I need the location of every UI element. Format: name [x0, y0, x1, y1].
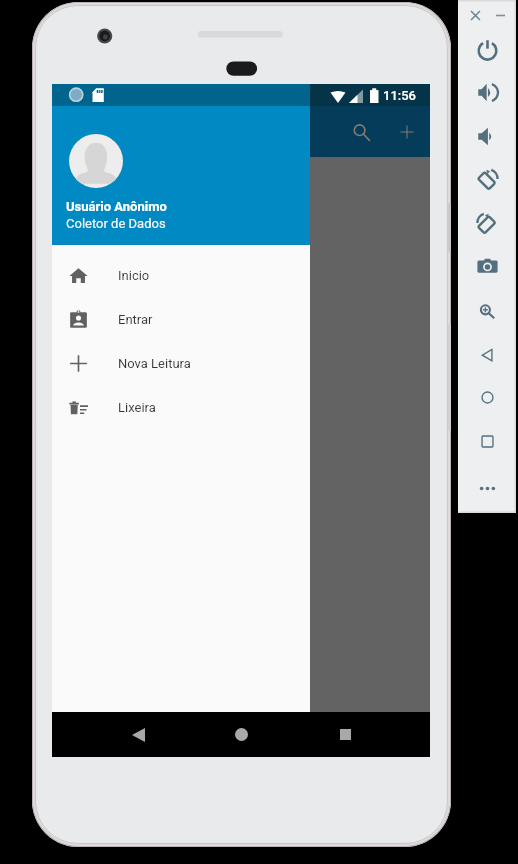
button[interactable]: Nova Leitura [52, 341, 310, 385]
button[interactable]: Minimize [490, 5, 510, 25]
button[interactable]: Home [473, 383, 501, 411]
staticText: 11:56 [383, 88, 416, 103]
button[interactable]: Entrar [52, 297, 310, 341]
staticText: Nova Leitura [118, 356, 191, 371]
button[interactable]: Recents [322, 712, 368, 757]
button[interactable]: Inicio [52, 253, 310, 297]
staticText: Coletor de Dados [66, 216, 166, 231]
button[interactable]: Volume down [473, 122, 501, 150]
staticText: Lixeira [118, 400, 156, 415]
button[interactable]: More [473, 474, 501, 502]
button[interactable]: Zoom [473, 297, 501, 325]
button[interactable]: Take screenshot [473, 252, 501, 280]
button[interactable]: Close [465, 5, 485, 25]
staticText: Entrar [118, 312, 153, 327]
button[interactable]: Search [338, 109, 384, 155]
button[interactable]: Volume up [473, 78, 501, 106]
button[interactable]: Back [473, 340, 501, 368]
button[interactable]: Power [473, 35, 501, 63]
staticText: Usuário Anônimo [66, 199, 167, 214]
button[interactable]: Lixeira [52, 385, 310, 429]
button[interactable]: Overview [473, 427, 501, 455]
button[interactable]: Rotate left [473, 165, 501, 193]
button[interactable]: Rotate right [473, 209, 501, 237]
button[interactable]: Add [384, 109, 430, 155]
button[interactable]: Usuário Anônimo [52, 106, 310, 245]
button[interactable]: Back [115, 712, 161, 757]
button[interactable]: Home [218, 712, 264, 757]
staticText: Inicio [118, 268, 150, 283]
